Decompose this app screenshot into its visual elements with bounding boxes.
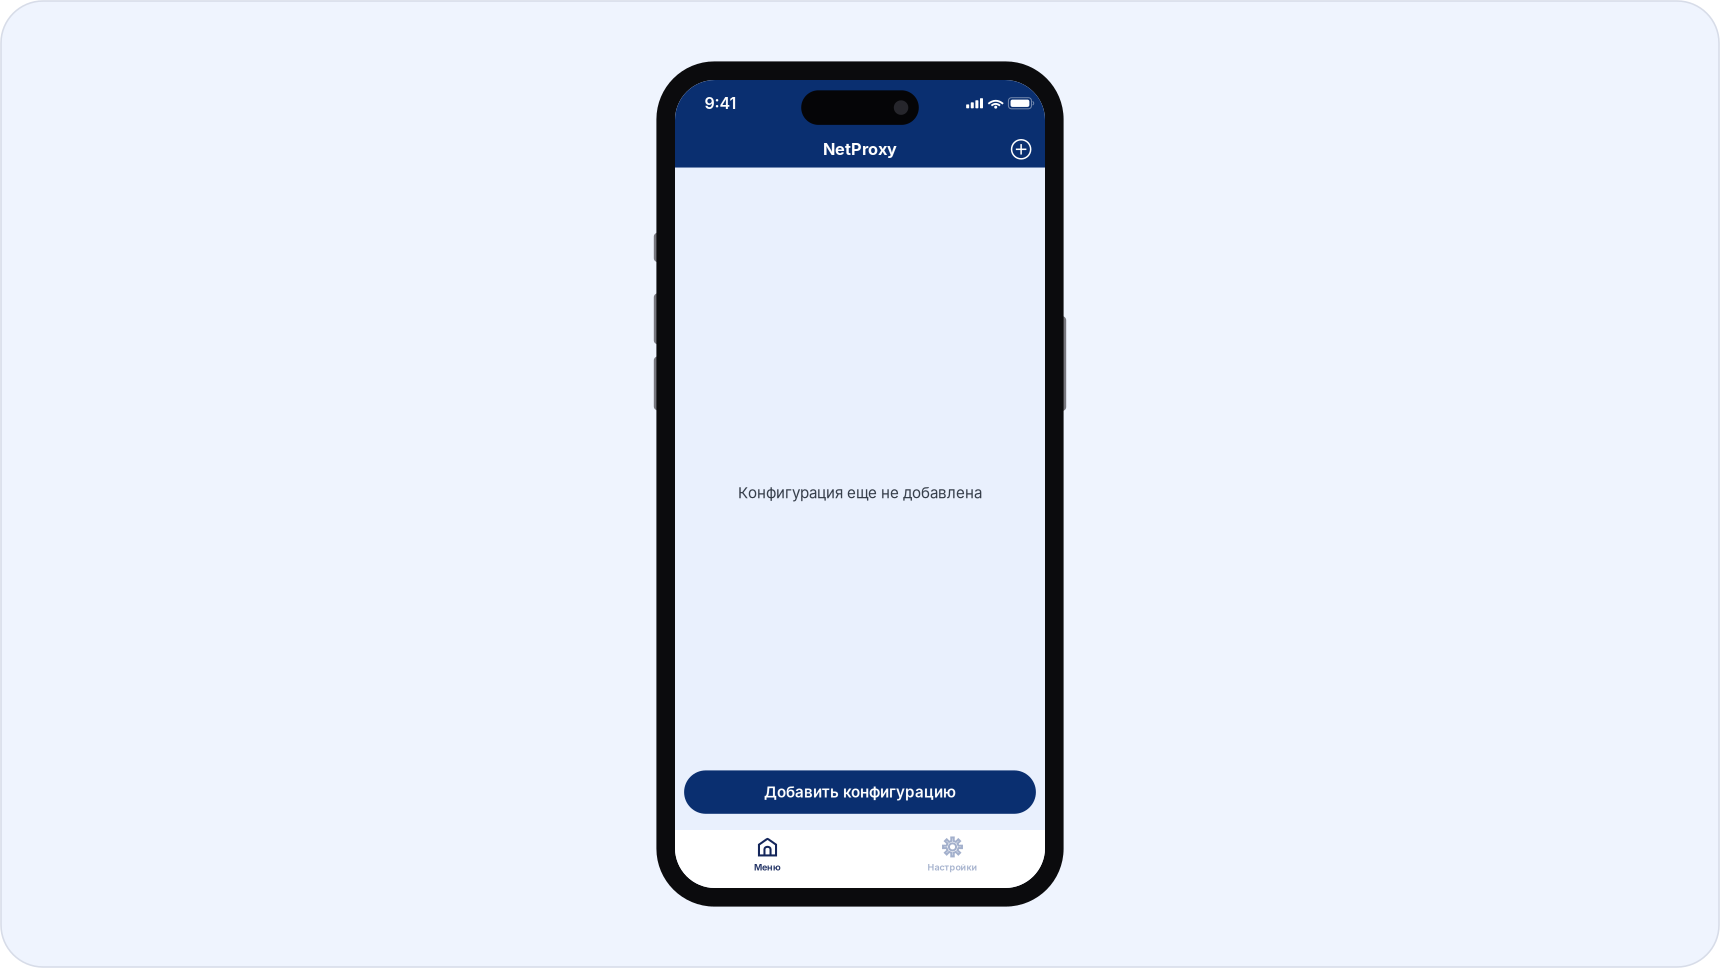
button[interactable]: Add configuration — [1002, 130, 1040, 168]
staticText: Меню — [754, 862, 781, 873]
staticText: 9:41 — [704, 94, 736, 113]
staticText: NetProxy — [823, 139, 897, 159]
button[interactable]: Добавить конфигурацию — [684, 770, 1036, 814]
button[interactable]: Меню — [675, 836, 860, 873]
staticText: Конфигурация еще не добавлена — [738, 484, 982, 502]
staticText: Настройки — [927, 862, 977, 873]
staticText: Добавить конфигурацию — [764, 783, 956, 801]
button[interactable]: Настройки — [860, 836, 1045, 873]
